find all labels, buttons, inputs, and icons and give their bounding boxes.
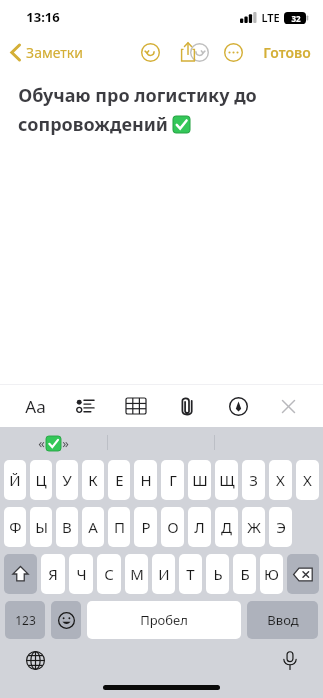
staticText: Э xyxy=(276,517,286,537)
button[interactable]: А xyxy=(82,507,104,547)
button[interactable]: Table xyxy=(114,386,158,426)
button[interactable]: Change keyboard language xyxy=(22,647,49,674)
button[interactable]: Т xyxy=(179,554,202,594)
staticText: 13:16 xyxy=(26,8,60,26)
button[interactable]: Р xyxy=(134,507,157,547)
staticText: З xyxy=(249,470,258,490)
staticText: Р xyxy=(141,517,151,537)
button[interactable]: Ч xyxy=(69,554,93,594)
button[interactable]: Э xyxy=(269,507,292,547)
button[interactable]: У xyxy=(56,460,78,500)
staticText: Готово xyxy=(263,43,311,62)
button[interactable]: П xyxy=(108,507,130,547)
button[interactable]: Х xyxy=(269,460,292,500)
staticText: Х xyxy=(303,470,312,490)
staticText: Ф xyxy=(9,517,22,537)
button[interactable]: More xyxy=(220,39,247,66)
staticText: Пробел xyxy=(140,611,188,629)
button[interactable]: Ь xyxy=(206,554,229,594)
button[interactable]: В xyxy=(56,507,78,547)
staticText: Я xyxy=(48,564,58,584)
staticText: С xyxy=(104,564,114,584)
button[interactable]: Text format xyxy=(13,386,57,426)
staticText: Н xyxy=(140,470,152,490)
button[interactable]: Ввод xyxy=(247,601,318,639)
button[interactable]: Ц xyxy=(30,460,52,500)
staticText: Ч xyxy=(76,564,87,584)
staticText: Ю xyxy=(264,564,279,584)
staticText: М xyxy=(130,564,144,584)
button[interactable]: М xyxy=(125,554,148,594)
button[interactable]: Пробел xyxy=(87,601,241,639)
button[interactable]: Щ xyxy=(215,460,238,500)
staticText: Т xyxy=(186,564,195,584)
staticText: Обучаю про логистику до xyxy=(18,83,257,108)
button[interactable]: Б xyxy=(233,554,256,594)
staticText: Ш xyxy=(192,470,208,490)
staticText: Е xyxy=(115,470,124,490)
staticText: Л xyxy=(194,517,205,537)
button[interactable]: Ы xyxy=(30,507,52,547)
staticText: К xyxy=(88,470,98,490)
button[interactable]: 123 xyxy=(5,601,45,639)
staticText: Ы xyxy=(35,517,48,537)
button[interactable]: Х xyxy=(296,460,319,500)
staticText: Ввод xyxy=(267,611,299,629)
button[interactable]: Заметки xyxy=(8,40,86,65)
staticText: П xyxy=(114,517,125,537)
staticText: « xyxy=(38,434,45,452)
button[interactable]: Д xyxy=(215,507,238,547)
staticText: Aa xyxy=(25,395,46,418)
button[interactable]: Dictation xyxy=(279,647,301,674)
staticText: LTE xyxy=(261,10,280,25)
button[interactable]: Share xyxy=(176,38,200,66)
staticText: Г xyxy=(169,470,177,490)
button[interactable]: Redo xyxy=(186,39,213,66)
staticText: Заметки xyxy=(26,43,83,62)
staticText: А xyxy=(88,517,98,537)
button[interactable]: Attach xyxy=(165,386,209,426)
button[interactable]: Е xyxy=(108,460,130,500)
staticText: Ж xyxy=(247,517,261,537)
staticText: У xyxy=(62,470,72,490)
button[interactable]: О xyxy=(161,507,184,547)
staticText: О xyxy=(167,517,179,537)
button[interactable]: Checklist xyxy=(63,386,107,426)
button[interactable]: « xyxy=(38,434,69,452)
staticText: Б xyxy=(240,564,250,584)
button[interactable]: Я xyxy=(41,554,65,594)
button[interactable]: Й xyxy=(4,460,26,500)
staticText: Ь xyxy=(213,564,223,584)
button[interactable]: Ж xyxy=(242,507,265,547)
button[interactable]: И xyxy=(152,554,175,594)
staticText: » xyxy=(62,434,69,452)
button[interactable]: З xyxy=(242,460,265,500)
button[interactable]: С xyxy=(97,554,121,594)
button[interactable]: К xyxy=(82,460,104,500)
staticText: 32 xyxy=(291,13,301,24)
staticText: В xyxy=(62,517,72,537)
button[interactable]: Shift xyxy=(4,554,37,594)
button[interactable]: Г xyxy=(161,460,184,500)
staticText: Х xyxy=(276,470,285,490)
button[interactable]: Л xyxy=(188,507,211,547)
button[interactable]: Готово xyxy=(261,39,313,66)
staticText: Д xyxy=(221,517,232,537)
button[interactable]: Undo xyxy=(137,39,164,66)
button[interactable]: Close keyboard xyxy=(266,386,310,426)
button[interactable]: Н xyxy=(134,460,157,500)
button[interactable]: Ф xyxy=(4,507,26,547)
button[interactable]: Ш xyxy=(188,460,211,500)
staticText: Й xyxy=(9,470,21,490)
button[interactable]: Emoji xyxy=(51,601,81,639)
staticText: Щ xyxy=(219,470,235,490)
staticText: Ц xyxy=(35,470,47,490)
staticText: сопровождений xyxy=(18,112,168,137)
button[interactable]: Backspace xyxy=(287,554,319,594)
staticText: 123 xyxy=(15,612,36,628)
button[interactable]: Ю xyxy=(260,554,283,594)
staticText: И xyxy=(158,564,170,584)
button[interactable]: Markup xyxy=(216,386,260,426)
